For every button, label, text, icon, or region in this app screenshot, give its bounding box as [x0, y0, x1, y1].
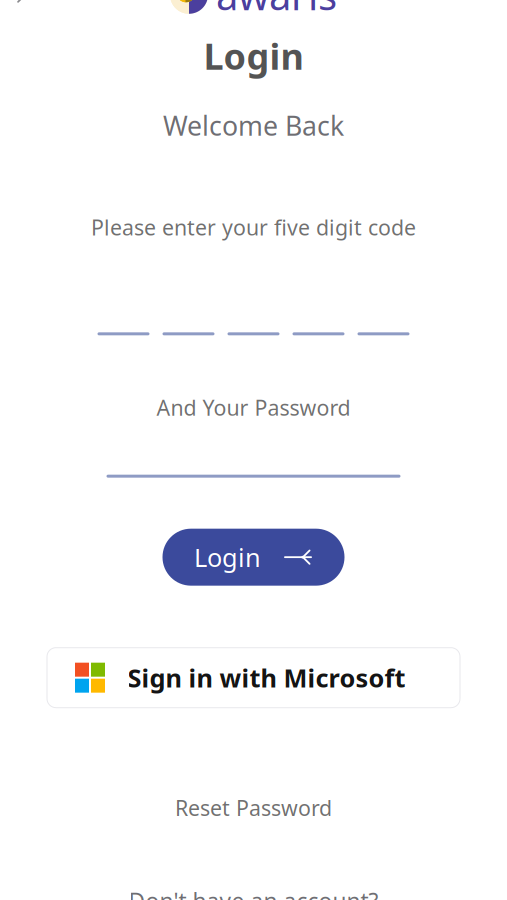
button[interactable]: Code digit	[97, 301, 149, 335]
button[interactable]: Back	[8, 0, 52, 15]
staticText: And Your Password	[156, 393, 350, 422]
staticText: Login	[194, 540, 261, 574]
button[interactable]: Sign in with Microsoft	[47, 648, 460, 708]
button[interactable]: Reset Password	[157, 786, 350, 830]
staticText: Sign in with Microsoft	[127, 661, 405, 694]
button[interactable]: Login	[162, 529, 344, 586]
staticText: Please enter your five digit code	[91, 213, 416, 241]
staticText: Welcome Back	[163, 108, 344, 143]
button[interactable]: Code digit	[162, 301, 214, 335]
staticText: awaris	[216, 0, 337, 21]
staticText: Reset Password	[175, 794, 332, 822]
staticText: Login	[203, 32, 303, 80]
button[interactable]: Code digit	[227, 301, 279, 335]
button[interactable]: Code digit	[292, 301, 344, 335]
staticText: Don't have an account?	[128, 886, 378, 900]
button[interactable]: Code digit	[357, 301, 409, 335]
